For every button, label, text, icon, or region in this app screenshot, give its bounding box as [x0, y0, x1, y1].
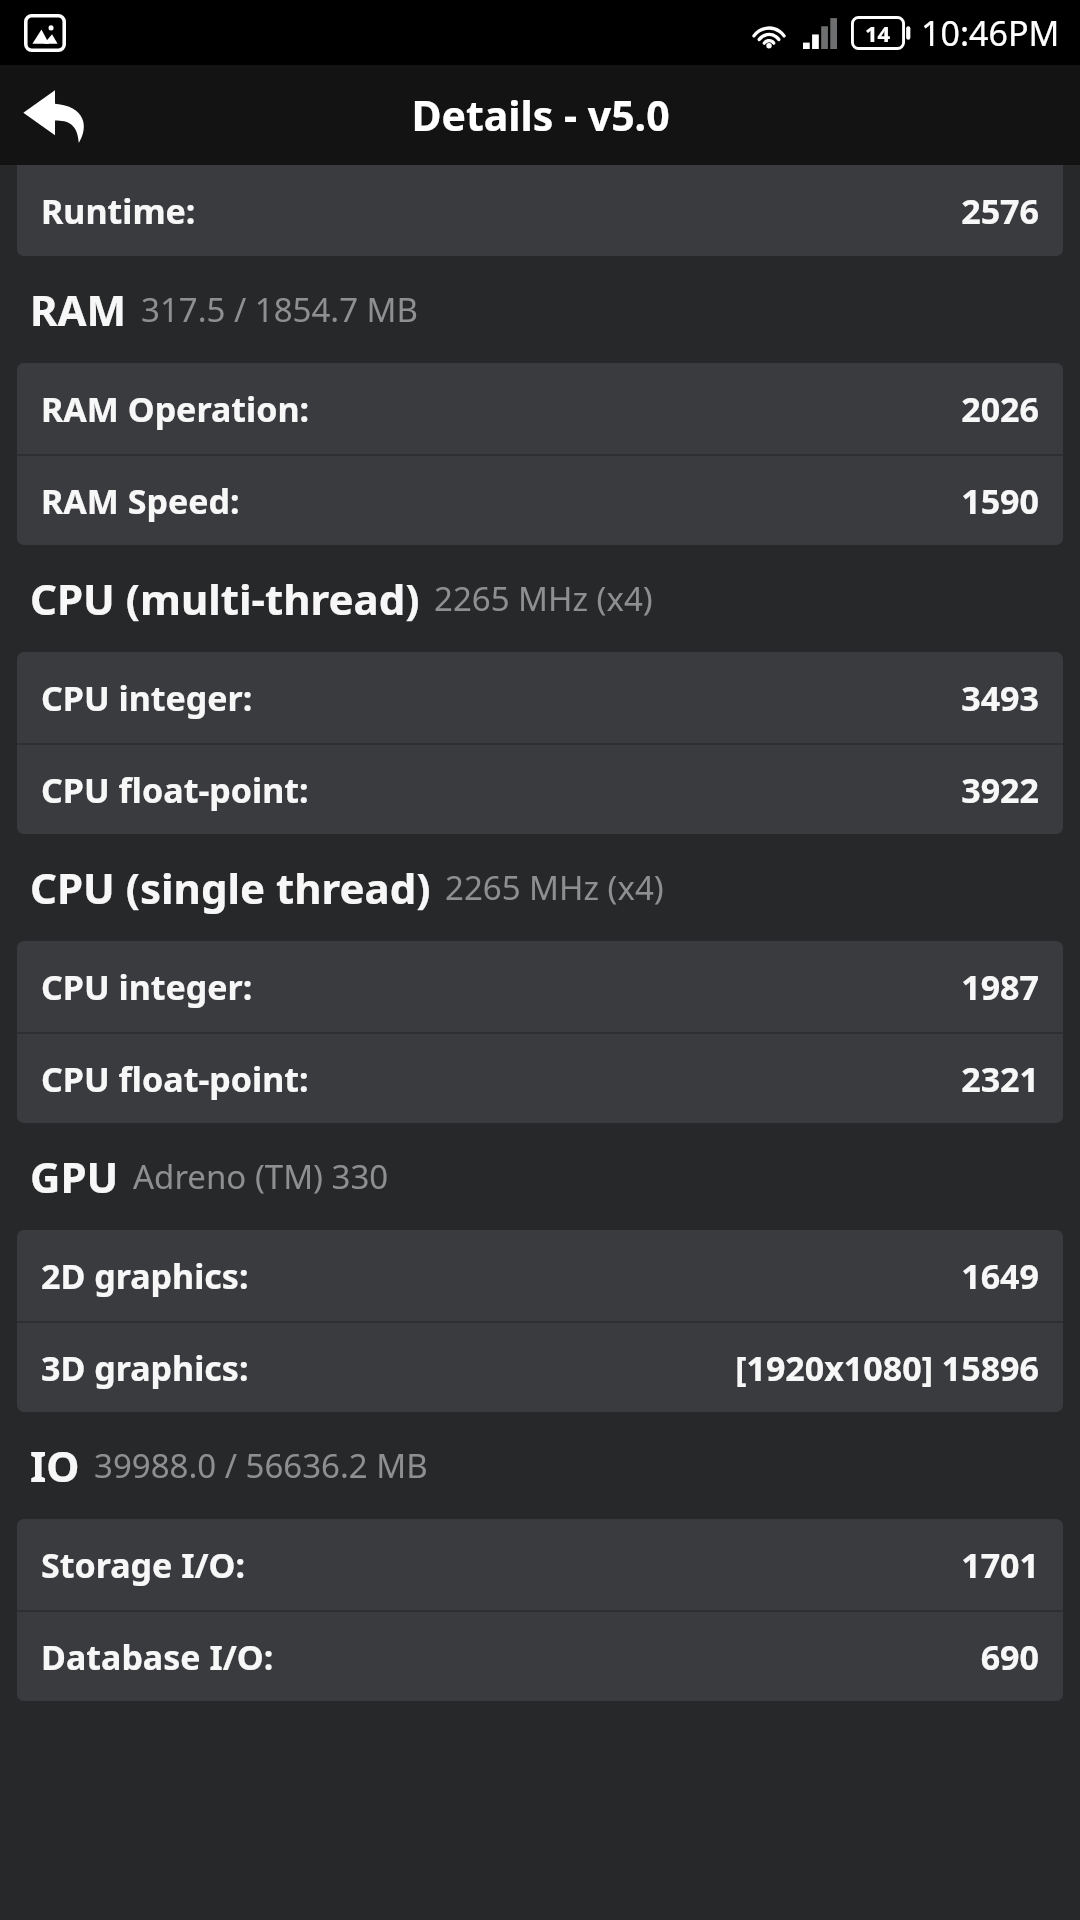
staticText: RAM Speed: [41, 478, 240, 524]
staticText: 39988.0 / 56636.2 MB [94, 1443, 428, 1488]
staticText: CPU (single thread) [30, 859, 431, 916]
staticText: 10:46PM [921, 10, 1060, 56]
button[interactable]: CPU float-point: [17, 1034, 1063, 1123]
staticText: 3493 [961, 675, 1039, 721]
button[interactable]: Storage I/O: [17, 1519, 1063, 1610]
button[interactable]: CPU float-point: [17, 745, 1063, 834]
button[interactable]: 2D graphics: [17, 1230, 1063, 1321]
staticText: CPU (multi-thread) [30, 570, 420, 627]
staticText: CPU float-point: [41, 1056, 309, 1102]
button[interactable]: CPU integer: [17, 652, 1063, 743]
staticText: 1590 [961, 478, 1039, 524]
staticText: Storage I/O: [41, 1542, 246, 1588]
staticText: IO [30, 1437, 80, 1494]
staticText: [1920x1080] 15896 [735, 1345, 1039, 1391]
staticText: 1649 [961, 1253, 1039, 1299]
staticText: RAM [30, 281, 127, 338]
staticText: 3922 [961, 767, 1039, 813]
staticText: Adreno (TM) 330 [133, 1154, 389, 1199]
staticText: CPU integer: [41, 675, 253, 721]
staticText: 1987 [961, 964, 1039, 1010]
staticText: RAM Operation: [41, 386, 310, 432]
staticText: CPU integer: [41, 964, 253, 1010]
staticText: Database I/O: [41, 1634, 274, 1680]
button[interactable]: Database I/O: [17, 1612, 1063, 1701]
button[interactable]: RAM Speed: [17, 456, 1063, 545]
staticText: 3D graphics: [41, 1345, 249, 1391]
staticText: 1701 [961, 1542, 1039, 1588]
button[interactable]: Back [0, 65, 110, 165]
button[interactable]: RAM Operation: [17, 363, 1063, 454]
button[interactable]: Runtime: [17, 165, 1063, 256]
button[interactable]: 3D graphics: [17, 1323, 1063, 1412]
staticText: 317.5 / 1854.7 MB [141, 287, 418, 332]
staticText: 690 [980, 1634, 1039, 1680]
staticText: 2D graphics: [41, 1253, 249, 1299]
staticText: 2026 [961, 386, 1039, 432]
staticText: 2576 [961, 188, 1039, 234]
staticText: 2265 MHz (x4) [445, 865, 664, 910]
staticText: 14 [865, 18, 891, 48]
staticText: GPU [30, 1148, 119, 1205]
staticText: 2321 [961, 1056, 1039, 1102]
staticText: Runtime: [41, 188, 196, 234]
staticText: 2265 MHz (x4) [434, 576, 653, 621]
button[interactable]: CPU integer: [17, 941, 1063, 1032]
staticText: Details - v5.0 [411, 87, 670, 143]
staticText: CPU float-point: [41, 767, 309, 813]
